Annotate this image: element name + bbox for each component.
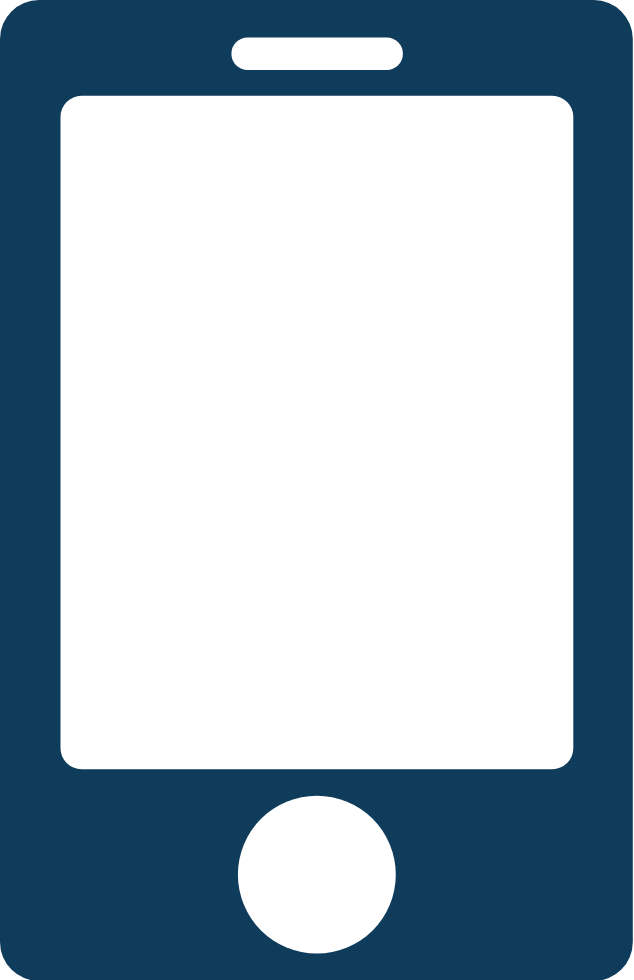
button[interactable]: Phone screen: [61, 96, 574, 769]
button[interactable]: Home button: [238, 796, 396, 954]
button[interactable]: Smartphone: [0, 0, 633, 980]
